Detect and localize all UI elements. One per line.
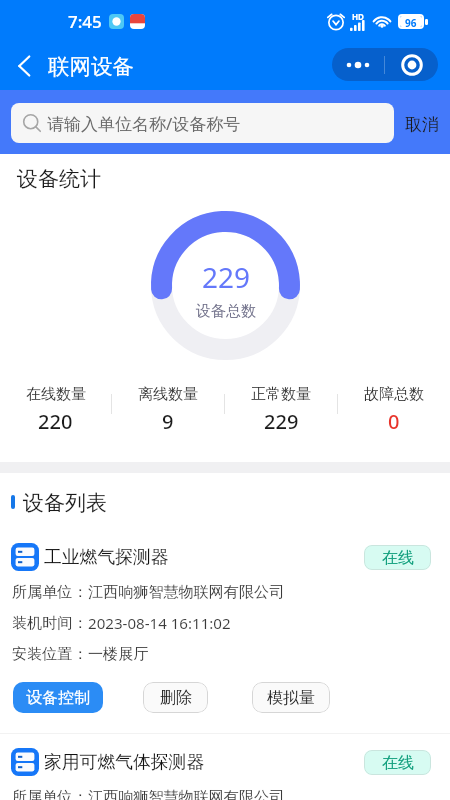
staticText: 2023-08-14 16:11:02	[88, 613, 231, 634]
staticText: 江西响狮智慧物联网有限公司	[88, 582, 285, 601]
staticText: 请输入单位名称/设备称号	[47, 112, 241, 135]
staticText: 一楼展厅	[88, 644, 149, 663]
button[interactable]: 取消	[394, 102, 450, 142]
staticText: 故障总数	[364, 385, 424, 404]
staticText: 9	[162, 408, 174, 435]
button[interactable]: 在线	[364, 750, 431, 775]
staticText: 96	[405, 16, 417, 27]
staticText: 7:45	[68, 10, 102, 33]
button[interactable]: 家用可燃气体探测器	[0, 734, 450, 800]
staticText: 安装位置：	[12, 644, 88, 663]
staticText: 229	[264, 408, 299, 435]
button[interactable]: Menu	[332, 48, 438, 81]
staticText: 装机时间：	[12, 613, 88, 632]
staticText: 正常数量	[251, 385, 311, 404]
button[interactable]: 模拟量	[252, 682, 330, 713]
staticText: 江西响狮智慧物联网有限公司	[88, 787, 285, 800]
staticText: 229	[202, 258, 251, 296]
staticText: 取消	[405, 114, 439, 135]
staticText: 删除	[160, 688, 192, 708]
staticText: 设备总数	[196, 302, 256, 321]
button[interactable]: 在线	[364, 545, 431, 570]
button[interactable]: 工业燃气探测器	[0, 529, 450, 733]
staticText: 离线数量	[138, 385, 198, 404]
staticText: 家用可燃气体探测器	[44, 751, 205, 773]
staticText: 在线数量	[26, 385, 86, 404]
staticText: 所属单位：	[12, 787, 88, 800]
staticText: 220	[38, 408, 73, 435]
staticText: 所属单位：	[12, 582, 88, 601]
button[interactable]: 设备控制	[13, 682, 103, 713]
button[interactable]: 删除	[143, 682, 208, 713]
button[interactable]: 请输入单位名称/设备称号	[11, 103, 394, 143]
staticText: 工业燃气探测器	[44, 546, 169, 568]
button[interactable]: Back	[0, 43, 46, 89]
staticText: 设备统计	[17, 166, 101, 192]
staticText: 设备控制	[26, 688, 90, 708]
staticText: 在线	[382, 753, 414, 773]
staticText: 设备列表	[23, 490, 107, 516]
staticText: HD	[352, 11, 364, 22]
staticText: 在线	[382, 548, 414, 568]
staticText: 0	[388, 408, 400, 435]
staticText: 模拟量	[267, 688, 315, 708]
staticText: 联网设备	[48, 53, 134, 80]
